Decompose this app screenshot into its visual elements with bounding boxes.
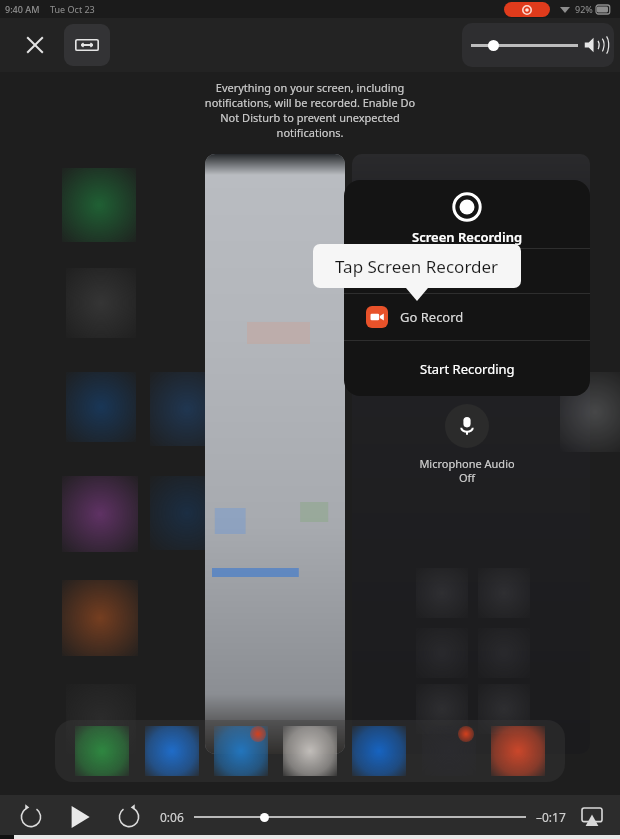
button[interactable]: Close xyxy=(14,24,56,66)
button[interactable]: Go Record xyxy=(344,294,590,340)
staticText: 92% xyxy=(575,3,593,15)
button[interactable]: Start Recording xyxy=(344,341,590,396)
staticText: 9:40 AM xyxy=(5,3,40,15)
button[interactable]: Forward 15 seconds xyxy=(112,800,146,834)
button[interactable]: Play xyxy=(62,799,98,835)
button[interactable]: Volume xyxy=(462,23,614,67)
staticText: Screen Recording xyxy=(412,228,523,246)
button[interactable]: Microphone Audio Off xyxy=(406,404,528,485)
staticText: Start Recording xyxy=(420,360,515,378)
staticText: Microphone Audio Off xyxy=(406,456,528,485)
button[interactable]: Rewind 15 seconds xyxy=(14,800,48,834)
staticText: Tap Screen Recorder xyxy=(335,255,499,278)
staticText: –0:17 xyxy=(536,809,566,825)
staticText: Go Record xyxy=(400,308,464,326)
staticText: 0:06 xyxy=(160,809,184,825)
button[interactable]: Fit to screen xyxy=(64,24,110,66)
staticText: Everything on your screen, including not… xyxy=(195,80,425,140)
staticText: Tue Oct 23 xyxy=(50,3,95,15)
button[interactable]: AirPlay xyxy=(578,803,606,831)
